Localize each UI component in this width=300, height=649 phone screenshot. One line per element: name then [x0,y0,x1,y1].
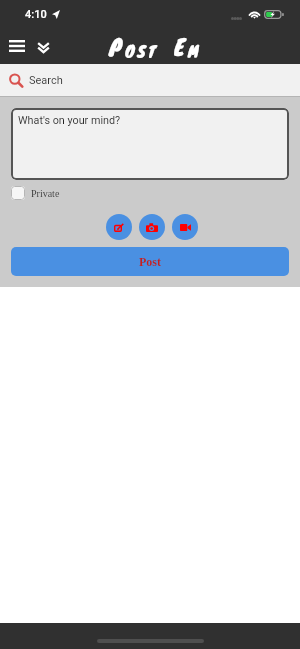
staticText: P [109,30,125,63]
button[interactable]: Draw [106,214,132,240]
button[interactable]: Post [11,247,289,276]
staticText: What's on your mind? [18,114,121,127]
button[interactable]: Search [0,64,300,97]
button[interactable]: Private [11,186,60,200]
staticText: M [188,39,201,62]
staticText: 4:10 [25,8,47,21]
button[interactable]: Menu [7,36,27,56]
button[interactable]: What's on your mind? [11,108,289,180]
staticText: E [174,30,188,63]
button[interactable]: Video [172,214,198,240]
staticText: Post [139,255,161,268]
staticText: OST [125,39,159,62]
staticText: Private [31,188,60,199]
staticText: Search [29,74,63,87]
button[interactable]: Expand [33,37,53,57]
button[interactable]: Camera [139,214,165,240]
